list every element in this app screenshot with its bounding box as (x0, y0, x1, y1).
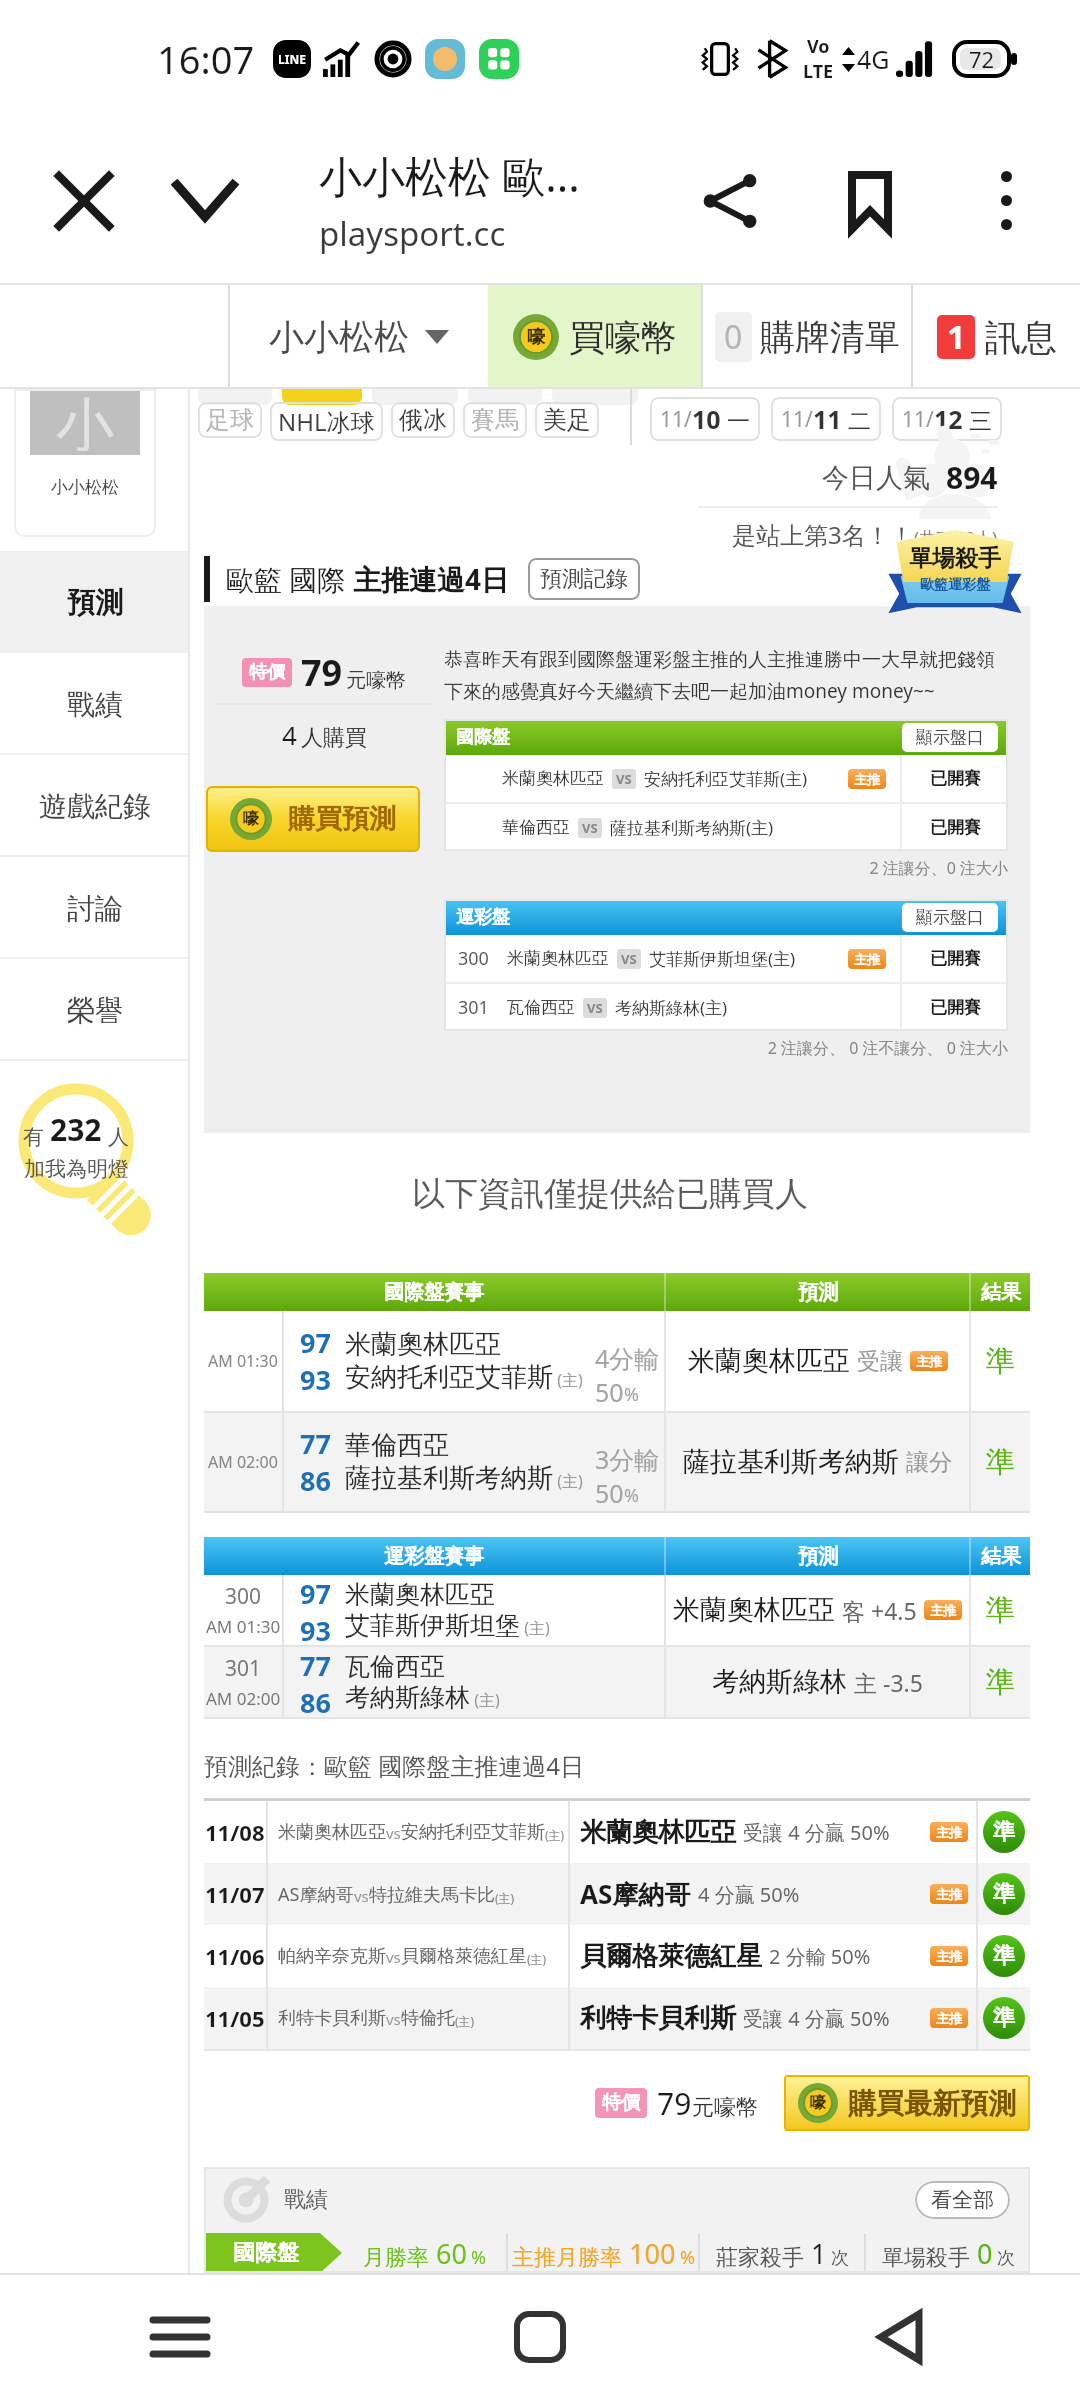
staticText: 購買最新預測 (848, 2086, 1016, 2121)
button[interactable]: 顯示盤口 (902, 723, 998, 752)
staticText: playsport.cc (319, 211, 506, 256)
staticText: 準 (993, 2004, 1015, 2032)
staticText: 準 (993, 1942, 1015, 1970)
staticText: 薩拉基利斯考納斯 (683, 1445, 899, 1479)
staticText: 顯示盤口 (916, 727, 984, 748)
staticText: 讓分 (906, 1448, 952, 1477)
button[interactable]: 301 (204, 1647, 1030, 1717)
staticText: 11/ (781, 405, 813, 434)
staticText: 賽馬 (471, 405, 519, 435)
staticText: 11/ (902, 405, 934, 434)
button[interactable]: 301 (444, 984, 1008, 1031)
staticText: 4分輸 (595, 1341, 660, 1375)
button[interactable] (468, 389, 542, 405)
button[interactable]: 11/07 (204, 1863, 1030, 1925)
button[interactable] (552, 389, 638, 405)
button[interactable]: 賽馬 (463, 402, 527, 438)
staticText: (主) (527, 1951, 547, 1967)
staticText: (主) (553, 1470, 583, 1492)
button[interactable]: 300 (204, 1575, 1030, 1645)
staticText: 特價 (602, 2091, 640, 2115)
staticText: 主推連過4日 (353, 560, 510, 598)
staticText: 元嚎幣 (346, 668, 406, 693)
button[interactable]: 小小松松 (230, 285, 488, 389)
staticText: 結果 (981, 1280, 1021, 1305)
button[interactable]: Expand (168, 118, 242, 283)
staticText: 有 (23, 1124, 44, 1150)
staticText: 50 (595, 1476, 624, 1510)
button[interactable]: 11/05 (204, 1987, 1030, 2049)
staticText: 主推 (854, 771, 880, 787)
button[interactable]: AM 01:30 (204, 1311, 1030, 1411)
staticText: 11/08 (205, 1817, 265, 1847)
button[interactable]: 預測記錄 (528, 558, 640, 600)
button[interactable] (198, 389, 272, 405)
staticText: 894 (946, 457, 998, 498)
button[interactable]: 看全部 (915, 2181, 1010, 2219)
button[interactable]: AM 02:00 (204, 1413, 1030, 1511)
staticText: 2 注讓分、 0 注不讓分、 0 注大小 (444, 1037, 1008, 1059)
staticText: 準 (986, 1444, 1015, 1481)
staticText: % (624, 1382, 639, 1407)
staticText: 嚎 (527, 326, 545, 349)
staticText: % (624, 1483, 639, 1508)
button[interactable]: 遊戲紀錄 (0, 755, 190, 857)
button[interactable] (372, 389, 458, 405)
staticText: 安納托利亞艾菲斯 (345, 1361, 553, 1394)
staticText: vs (386, 2009, 401, 2029)
staticText: 次 (831, 2247, 849, 2270)
staticText: 榮譽 (67, 993, 123, 1028)
button[interactable]: 11/ (650, 397, 760, 441)
staticText: 討論 (67, 891, 123, 926)
button[interactable]: 300 (444, 935, 1008, 982)
staticText: 安納托利亞艾菲斯 (401, 1821, 545, 1844)
button[interactable]: 11/08 (204, 1801, 1030, 1863)
staticText: 國際盤 (233, 2239, 299, 2267)
button[interactable]: 討論 (0, 857, 190, 959)
button[interactable]: 美足 (535, 402, 599, 438)
button[interactable]: 俄冰 (391, 402, 455, 438)
button[interactable]: Recents (0, 2273, 360, 2400)
button[interactable]: Bookmark (807, 118, 932, 283)
button[interactable]: 米蘭奧林匹亞 (444, 755, 1008, 802)
button[interactable]: Back (720, 2273, 1080, 2400)
staticText: 預測 (798, 1280, 838, 1305)
button[interactable]: 嚎 (488, 285, 701, 389)
staticText: 結果 (981, 1544, 1021, 1569)
button[interactable]: 榮譽 (0, 959, 190, 1061)
staticText: 100 (629, 2235, 676, 2272)
button[interactable]: Close (0, 118, 168, 283)
button[interactable]: 嚎 (206, 786, 420, 852)
button[interactable] (282, 389, 362, 405)
staticText: 小小松松 歐... (319, 146, 580, 205)
staticText: 小 (56, 389, 114, 451)
button[interactable]: Share (652, 118, 807, 283)
staticText: 300 (458, 946, 489, 971)
staticText: vs (386, 1947, 401, 1967)
button[interactable]: 嚎 (784, 2075, 1030, 2131)
staticText: 運彩盤賽事 (384, 1544, 484, 1569)
staticText: 足球 (206, 405, 254, 435)
button[interactable]: 顯示盤口 (902, 903, 998, 932)
button[interactable]: 預測 (0, 551, 190, 653)
button[interactable]: 0 (703, 285, 911, 389)
button[interactable]: 華倫西亞 (444, 804, 1008, 851)
staticText: 單場殺手 (882, 2244, 970, 2272)
button[interactable]: 11/ (892, 397, 1002, 441)
button[interactable]: 戰績 (0, 653, 190, 755)
staticText: 60 (436, 2235, 467, 2272)
button[interactable]: 足球 (198, 402, 262, 438)
staticText: 16:07 (157, 33, 255, 85)
staticText: 俄冰 (399, 405, 447, 435)
button[interactable]: 11/ (771, 397, 881, 441)
staticText: 0 (977, 2235, 993, 2272)
button[interactable]: NHL冰球 (270, 402, 383, 441)
button[interactable]: Home (360, 2273, 720, 2400)
staticText: 受讓 (857, 1347, 903, 1376)
staticText: 準 (993, 1818, 1015, 1846)
button[interactable]: More options (932, 118, 1080, 283)
button[interactable]: 1 (913, 285, 1080, 389)
staticText: 小小松松 (51, 477, 119, 498)
button[interactable]: 11/06 (204, 1925, 1030, 1987)
staticText: 華倫西亞 (502, 817, 570, 838)
